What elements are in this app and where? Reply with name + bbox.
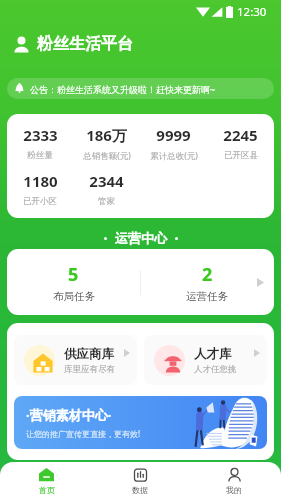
button[interactable]: 我的 <box>187 462 281 500</box>
staticText: 粉丝生活平台 <box>37 34 133 54</box>
button[interactable]: 2 <box>140 249 274 315</box>
staticText: 运营任务 <box>186 290 228 303</box>
staticText: 管家 <box>98 196 115 207</box>
staticText: 公告：粉丝生活系统又升级啦！赶快来更新啊~ <box>30 83 216 95</box>
staticText: 9999 <box>156 125 191 145</box>
staticText: 5 <box>68 262 79 287</box>
button[interactable]: ·营销素材中心· <box>14 396 267 449</box>
staticText: 2 <box>202 262 213 287</box>
staticText: 累计总收(元) <box>150 150 198 162</box>
staticText: 库里应有尽有 <box>64 364 115 375</box>
staticText: 人才任您挑 <box>194 364 237 375</box>
staticText: 运营中心 <box>115 230 167 246</box>
button[interactable]: 首页 <box>0 462 93 500</box>
staticText: 首页 <box>39 485 55 495</box>
staticText: 人才库 <box>194 346 232 362</box>
staticText: 数据 <box>132 485 148 495</box>
staticText: 总销售额(元) <box>83 150 131 162</box>
staticText: 12:30 <box>237 4 267 20</box>
button[interactable]: 公告：粉丝生活系统又升级啦！赶快来更新啊~ <box>7 78 274 99</box>
staticText: 186万 <box>86 125 127 145</box>
button[interactable]: 供应商库 <box>14 335 137 385</box>
staticText: 粉丝量 <box>27 150 53 161</box>
staticText: 2344 <box>89 171 124 191</box>
staticText: 已开区县 <box>224 150 258 161</box>
staticText: 布局任务 <box>53 290 95 303</box>
button[interactable]: 5 <box>7 249 140 315</box>
staticText: 2245 <box>223 125 258 145</box>
staticText: 让您的推广宣传更直接，更有效! <box>26 428 141 439</box>
staticText: 已开小区 <box>23 196 57 207</box>
staticText: ·营销素材中心· <box>26 406 112 424</box>
staticText: 2333 <box>23 125 58 145</box>
staticText: 1180 <box>23 171 58 191</box>
button[interactable]: 人才库 <box>144 335 267 385</box>
staticText: 我的 <box>226 485 242 495</box>
staticText: 供应商库 <box>64 346 114 362</box>
button[interactable]: 数据 <box>93 462 187 500</box>
